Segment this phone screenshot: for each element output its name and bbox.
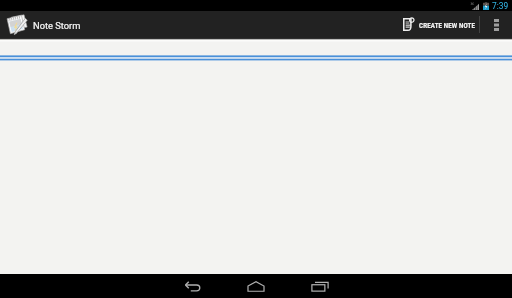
button[interactable]: More options xyxy=(480,11,512,38)
staticText: Note Storm xyxy=(33,20,81,31)
staticText: CREATE NEW NOTE xyxy=(419,21,475,30)
button[interactable]: Home xyxy=(234,274,278,298)
button[interactable]: Back xyxy=(170,274,214,298)
staticText: 7:39 xyxy=(492,1,509,11)
button[interactable]: CREATE NEW NOTE xyxy=(397,11,479,38)
button[interactable]: Recents xyxy=(298,274,342,298)
